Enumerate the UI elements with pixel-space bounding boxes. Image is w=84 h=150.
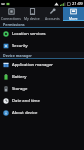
staticText: Battery [12, 74, 27, 80]
button[interactable]: More [63, 7, 84, 21]
staticText: More [69, 16, 78, 21]
button[interactable]: Storage [0, 83, 84, 95]
staticText: Location services [12, 31, 46, 37]
staticText: Storage [12, 86, 28, 92]
button[interactable]: Date and time [0, 95, 84, 107]
button[interactable]: About device [0, 107, 84, 119]
staticText: Date and time [12, 98, 40, 104]
staticText: Accounts [45, 16, 60, 21]
staticText: Permissions [3, 22, 25, 27]
button[interactable]: My device [21, 7, 42, 21]
staticText: Security [12, 43, 28, 49]
button[interactable]: Location services [0, 28, 84, 40]
staticText: 21:09 [72, 1, 83, 7]
button[interactable]: Security [0, 40, 84, 52]
button[interactable]: Battery [0, 71, 84, 83]
staticText: Application manager [12, 62, 54, 68]
staticText: About device [12, 110, 38, 116]
staticText: My device [24, 16, 40, 21]
staticText: Connections [1, 16, 21, 21]
button[interactable]: Accounts [42, 7, 63, 21]
staticText: Device manager [3, 53, 32, 58]
button[interactable]: Application manager [0, 59, 84, 71]
button[interactable]: Connections [0, 7, 21, 21]
